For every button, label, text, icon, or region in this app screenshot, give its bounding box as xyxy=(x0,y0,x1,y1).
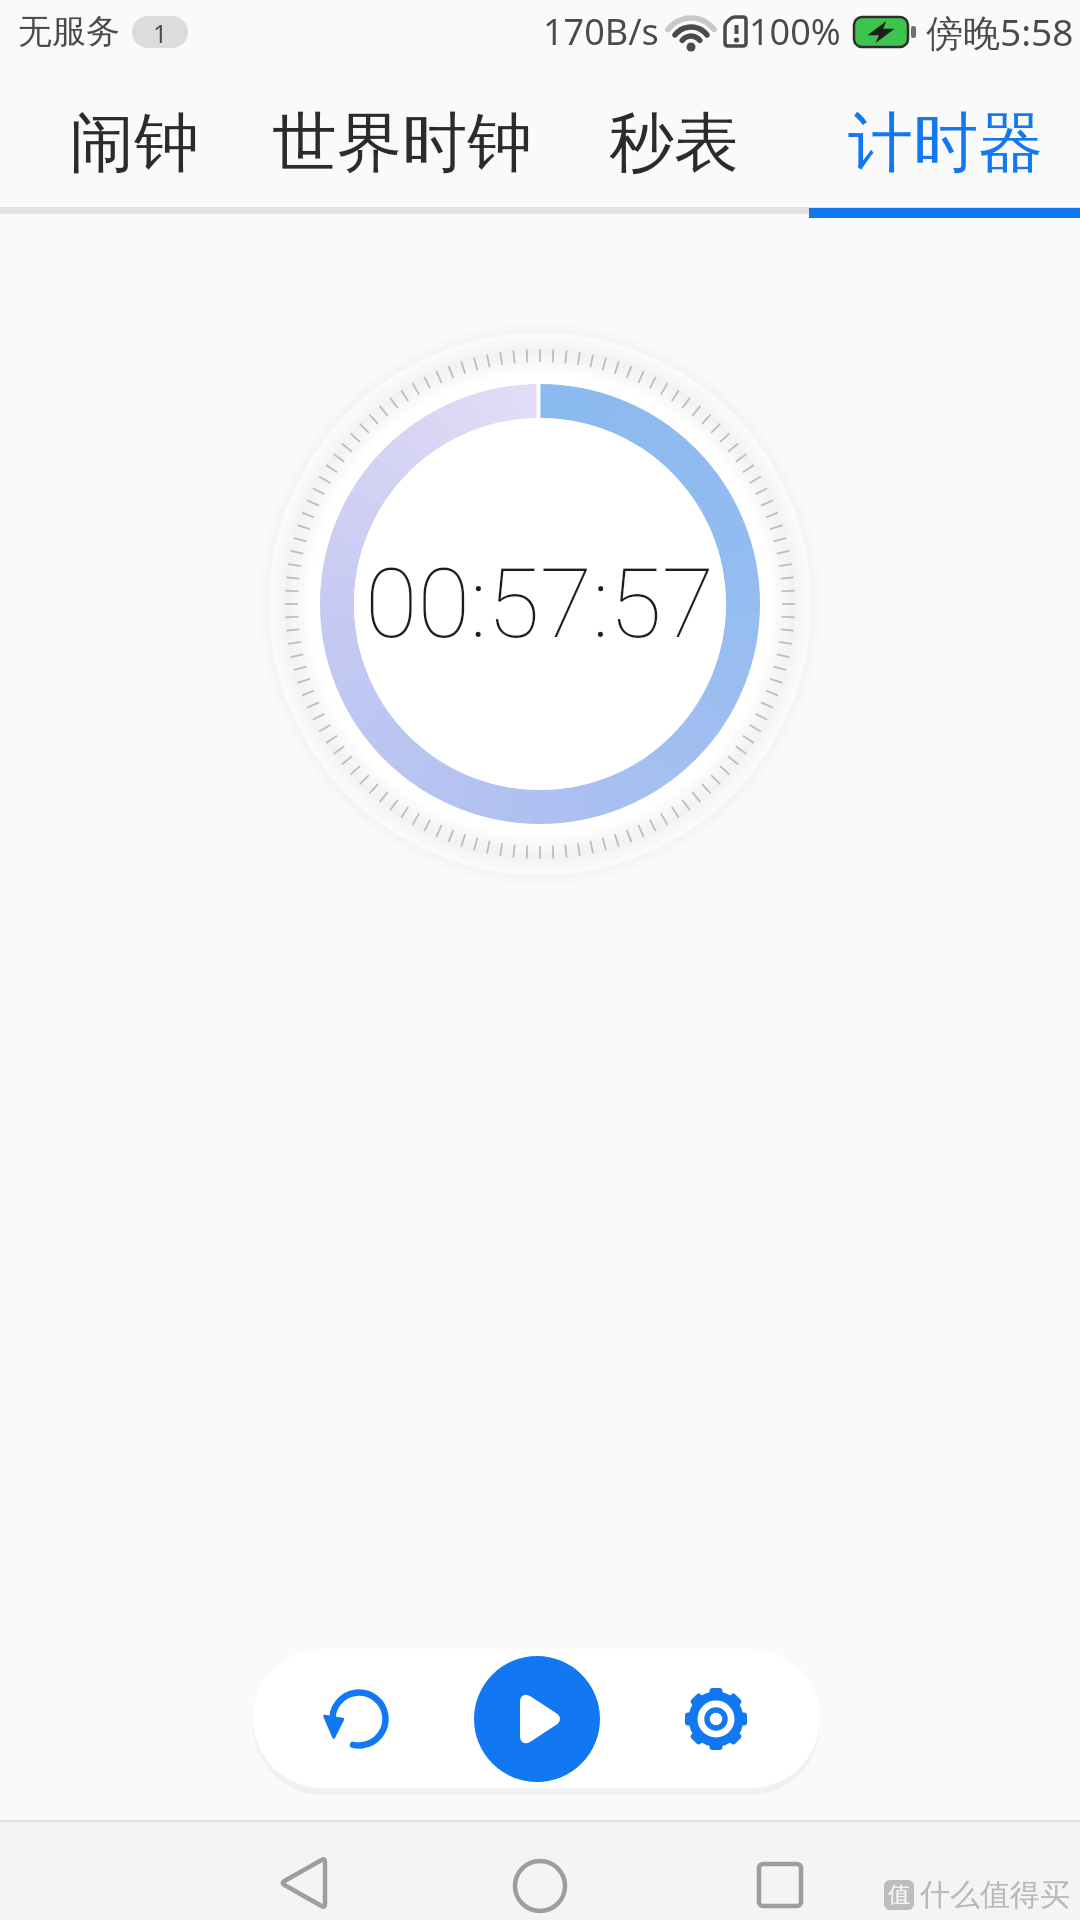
staticText: 计时器 xyxy=(848,102,1043,184)
button[interactable]: 闹钟 xyxy=(63,96,205,190)
staticText: 170B/s xyxy=(543,7,659,56)
button[interactable]: 计时器 xyxy=(842,96,1049,190)
button[interactable]: 世界时钟 xyxy=(266,96,538,190)
button[interactable] xyxy=(268,1852,336,1914)
staticText: 值 xyxy=(888,1881,910,1909)
button[interactable] xyxy=(474,1656,600,1782)
staticText: 100% xyxy=(749,7,841,56)
button[interactable] xyxy=(682,1685,750,1753)
button[interactable] xyxy=(752,1857,808,1913)
staticText: 00:57:57 xyxy=(365,548,715,661)
button[interactable] xyxy=(325,1685,393,1753)
staticText: 闹钟 xyxy=(69,102,199,184)
button[interactable] xyxy=(509,1855,571,1917)
staticText: 无服务 xyxy=(18,10,120,53)
staticText: 1 xyxy=(153,16,168,48)
staticText: 世界时钟 xyxy=(272,102,532,184)
staticText: 傍晚5:58 xyxy=(926,6,1074,57)
staticText: 什么值得买 xyxy=(920,1876,1070,1914)
staticText: 秒表 xyxy=(609,102,739,184)
button[interactable]: 秒表 xyxy=(603,96,745,190)
